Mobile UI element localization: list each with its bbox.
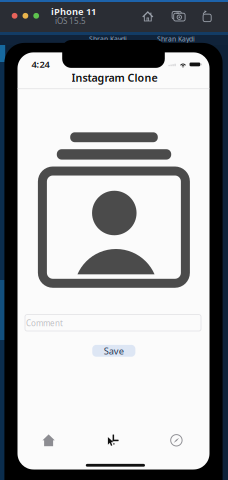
staticText: iOS 15.5 — [55, 16, 86, 26]
button[interactable]: Explore — [159, 427, 193, 453]
button[interactable]: Home — [32, 427, 66, 453]
staticText: 4:24 — [32, 58, 50, 70]
staticText: Save — [104, 345, 124, 357]
staticText: iPhone 11 — [51, 5, 96, 17]
staticText: Comment — [26, 318, 63, 328]
button[interactable]: Screenshot — [172, 11, 185, 21]
button[interactable]: Home — [142, 10, 153, 22]
staticText: Shran Kaydi — [89, 34, 127, 43]
staticText: Instagram Clone — [72, 71, 158, 85]
button[interactable]: New Post — [96, 427, 130, 453]
button[interactable]: Rotate — [201, 10, 212, 22]
staticText: Shran Kaydi — [157, 34, 195, 43]
button[interactable]: Save — [92, 345, 135, 357]
